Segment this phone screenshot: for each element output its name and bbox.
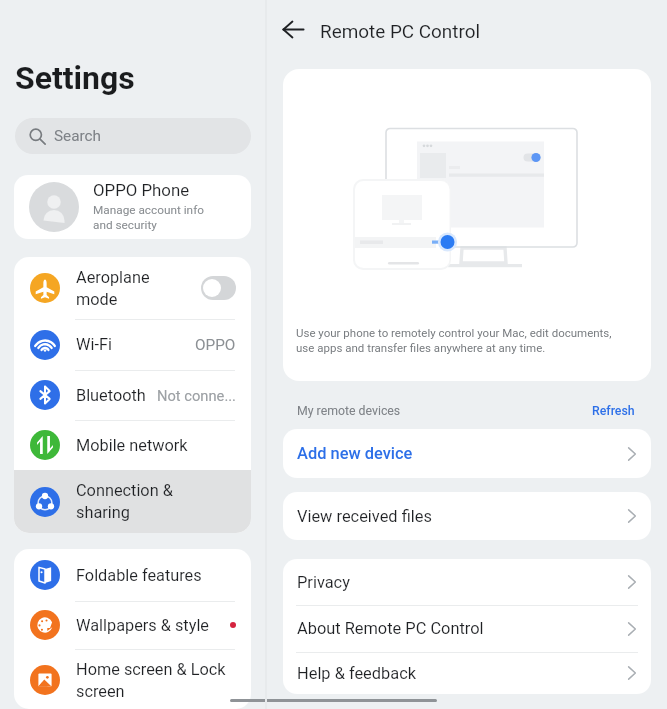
staticText: Home screen & Lock screen [76,660,236,701]
button[interactable]: Wi-Fi [14,319,251,370]
button[interactable]: Back [277,13,310,46]
staticText: Use your phone to remotely control your … [296,326,612,355]
staticText: My remote devices [297,404,401,418]
button[interactable]: Connection & sharing [14,470,251,533]
button[interactable]: Mobile network [14,420,251,470]
staticText: Wi-Fi [76,335,195,354]
button[interactable]: View received files [283,492,651,540]
button[interactable]: Aeroplane mode [201,276,236,300]
button[interactable]: Refresh [592,404,635,418]
button[interactable]: Search [15,118,251,154]
staticText: Settings [15,59,135,97]
staticText: OPPO [195,336,236,354]
staticText: Not conne... [157,387,236,404]
button[interactable]: Foldable features [14,549,251,601]
staticText: Foldable features [76,566,236,585]
button[interactable]: Wallpapers & style [14,601,251,649]
staticText: Search [54,127,101,145]
button[interactable]: Add new device [283,429,651,478]
staticText: Help & feedback [297,664,628,683]
staticText: About Remote PC Control [297,619,628,638]
staticText: Remote PC Control [320,20,481,42]
staticText: Aeroplane mode [76,268,201,309]
staticText: Bluetooth [76,386,157,405]
staticText: Mobile network [76,436,236,455]
button[interactable]: About Remote PC Control [283,605,651,652]
staticText: Wallpapers & style [76,616,230,635]
button[interactable]: Aeroplane mode [14,257,251,319]
button[interactable]: Privacy [283,559,651,605]
staticText: Add new device [297,444,628,463]
button[interactable]: OPPO Phone [14,175,251,239]
button[interactable]: Home screen & Lock screen [14,649,251,709]
button[interactable]: Help & feedback [283,652,651,694]
staticText: OPPO Phone [93,180,190,200]
button[interactable]: Bluetooth [14,370,251,420]
staticText: Connection & sharing [76,481,236,522]
staticText: Privacy [297,573,628,592]
staticText: Manage account info and security [93,203,204,232]
staticText: View received files [297,507,628,526]
